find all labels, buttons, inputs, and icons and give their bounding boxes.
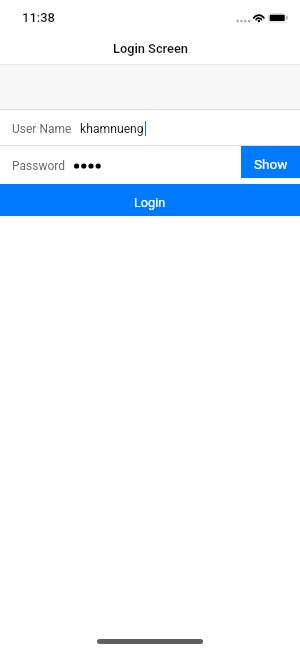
staticText: User Name	[12, 122, 72, 136]
button[interactable]: Show	[241, 146, 300, 178]
button[interactable]: User Name	[0, 110, 300, 145]
staticText: 11:38	[22, 10, 55, 25]
staticText: Password	[12, 159, 66, 173]
staticText: khamnueng	[80, 122, 144, 136]
staticText: Login	[134, 195, 166, 210]
button[interactable]: Login	[0, 184, 300, 216]
button[interactable]: Password	[0, 146, 241, 178]
staticText: Login Screen	[113, 41, 188, 56]
staticText: Show	[254, 156, 288, 172]
